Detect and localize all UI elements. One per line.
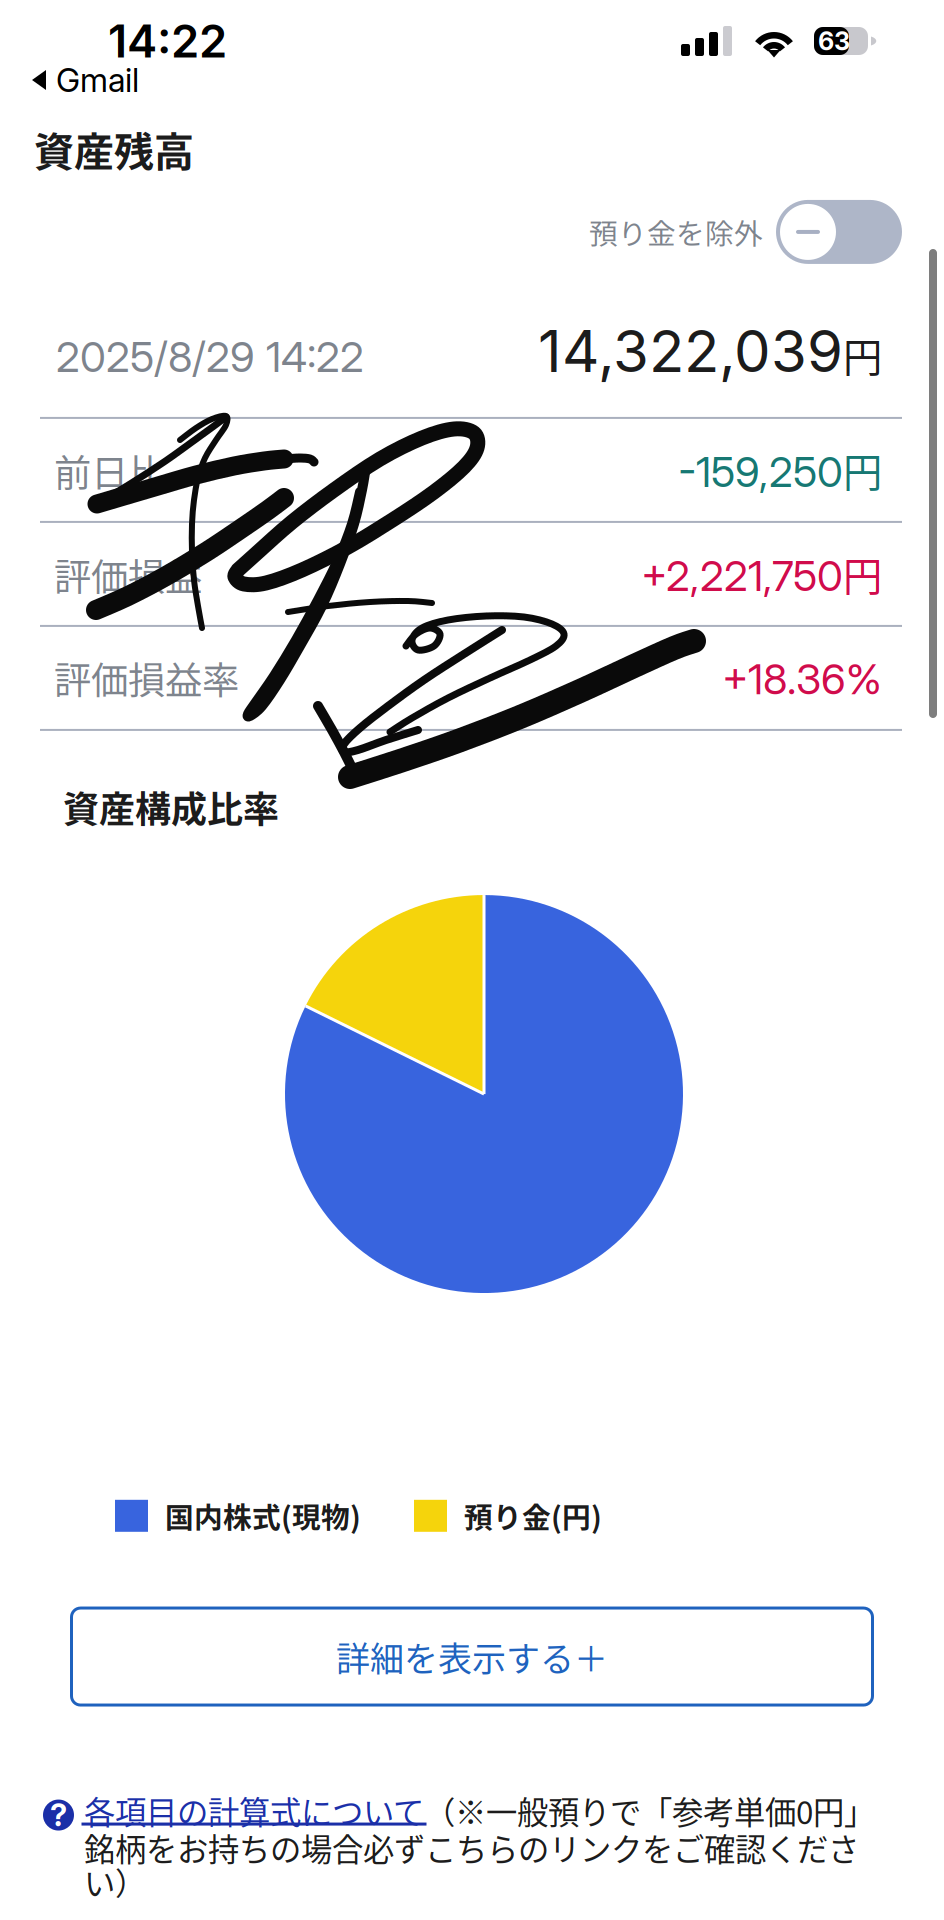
staticText: 評価損益率: [54, 651, 239, 705]
staticText: 14:22: [108, 14, 227, 68]
staticText: （※一般預りで「参考単価0円」: [424, 1788, 875, 1833]
staticText: 国内株式(現物): [165, 1495, 361, 1536]
button[interactable]: 各項目の計算式について: [84, 1791, 424, 1831]
staticText: +2,221,750: [641, 550, 843, 601]
staticText: 14,322,039: [538, 316, 843, 386]
staticText: 銘柄をお持ちの場合必ずこちらのリンクをご確認くださ: [84, 1825, 859, 1870]
staticText: +18.36%: [722, 653, 882, 704]
staticText: 詳細を表示する＋: [336, 1632, 608, 1681]
staticText: 資産残高: [34, 120, 194, 178]
staticText: 円: [843, 326, 882, 383]
staticText: 預り金を除外: [589, 211, 763, 253]
staticText: ?: [50, 1796, 67, 1834]
staticText: 評価損益: [54, 548, 202, 602]
staticText: -159,250: [678, 446, 843, 497]
staticText: 円: [843, 441, 882, 498]
staticText: 2025/8/29 14:22: [56, 331, 364, 382]
staticText: 各項目の計算式について: [84, 1788, 424, 1833]
staticText: 資産構成比率: [63, 781, 279, 833]
button[interactable]: 預り金を除外: [776, 200, 902, 264]
button[interactable]: Gmail: [0, 63, 139, 97]
staticText: 63: [818, 26, 850, 56]
staticText: 預り金(円): [464, 1495, 602, 1536]
staticText: い）: [84, 1859, 146, 1904]
staticText: 前日比: [54, 444, 165, 498]
staticText: 円: [843, 545, 882, 602]
button[interactable]: 詳細を表示する＋: [70, 1607, 874, 1707]
button[interactable]: ヘルプ: [32, 1791, 74, 1831]
staticText: Gmail: [56, 60, 139, 100]
